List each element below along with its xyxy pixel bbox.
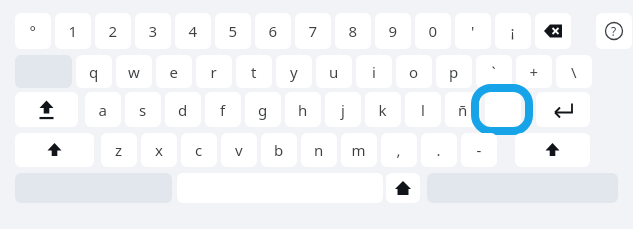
button[interactable] bbox=[135, 13, 171, 49]
button[interactable] bbox=[316, 55, 352, 88]
button[interactable] bbox=[325, 92, 361, 127]
button[interactable] bbox=[285, 92, 321, 127]
button[interactable] bbox=[341, 133, 377, 167]
button[interactable] bbox=[55, 13, 91, 49]
button[interactable] bbox=[365, 92, 401, 127]
button[interactable] bbox=[455, 13, 491, 49]
button[interactable] bbox=[125, 92, 161, 127]
button[interactable]: Shift bbox=[15, 133, 94, 167]
button[interactable] bbox=[516, 55, 552, 88]
button[interactable] bbox=[556, 55, 592, 88]
button[interactable] bbox=[295, 13, 331, 49]
button[interactable] bbox=[276, 55, 312, 88]
button[interactable] bbox=[175, 13, 211, 49]
button[interactable] bbox=[445, 92, 481, 127]
button[interactable] bbox=[436, 55, 472, 88]
button[interactable] bbox=[415, 13, 451, 49]
button[interactable]: Selected key bbox=[485, 92, 521, 127]
button[interactable]: Home bbox=[386, 173, 420, 203]
button[interactable] bbox=[221, 133, 257, 167]
button[interactable] bbox=[236, 55, 272, 88]
button[interactable] bbox=[245, 92, 281, 127]
button[interactable] bbox=[375, 13, 411, 49]
button[interactable] bbox=[476, 55, 512, 88]
button[interactable] bbox=[205, 92, 241, 127]
button[interactable] bbox=[15, 13, 51, 49]
button[interactable] bbox=[95, 13, 131, 49]
button[interactable]: Caps lock bbox=[15, 92, 78, 127]
button[interactable] bbox=[85, 92, 121, 127]
button[interactable] bbox=[396, 55, 432, 88]
button[interactable] bbox=[101, 133, 137, 167]
button[interactable] bbox=[116, 55, 152, 88]
button[interactable] bbox=[196, 55, 232, 88]
button[interactable] bbox=[405, 92, 441, 127]
button[interactable] bbox=[165, 92, 201, 127]
button[interactable] bbox=[76, 55, 112, 88]
button[interactable]: Shift bbox=[515, 133, 590, 167]
button[interactable]: Backspace bbox=[535, 13, 571, 49]
button[interactable] bbox=[181, 133, 217, 167]
button[interactable] bbox=[421, 133, 457, 167]
button[interactable] bbox=[255, 13, 291, 49]
button[interactable] bbox=[261, 133, 297, 167]
button[interactable] bbox=[461, 133, 497, 167]
button[interactable]: Enter bbox=[536, 92, 590, 127]
button[interactable] bbox=[381, 133, 417, 167]
button[interactable]: Help bbox=[596, 13, 632, 49]
button[interactable] bbox=[356, 55, 392, 88]
button[interactable] bbox=[215, 13, 251, 49]
button[interactable] bbox=[495, 13, 531, 49]
button[interactable] bbox=[335, 13, 371, 49]
button[interactable] bbox=[301, 133, 337, 167]
button[interactable] bbox=[156, 55, 192, 88]
button[interactable] bbox=[141, 133, 177, 167]
